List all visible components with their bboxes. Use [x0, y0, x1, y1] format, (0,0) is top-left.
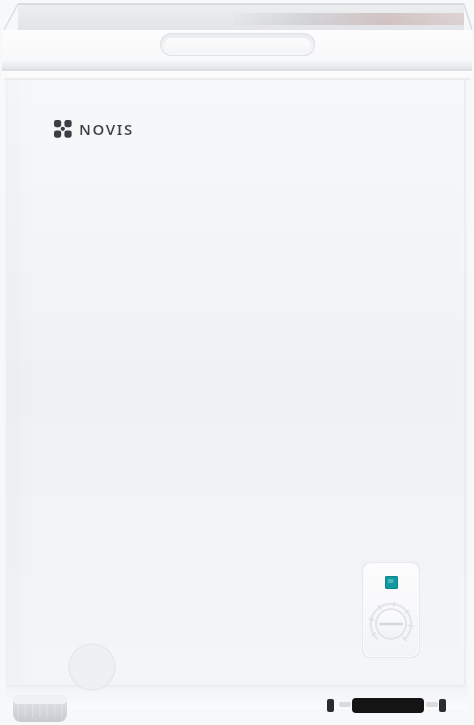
button[interactable]: Thermostat dial	[369, 602, 413, 646]
button[interactable]: Lid handle	[160, 33, 315, 56]
button[interactable]: NOVIS brand logo	[54, 119, 134, 139]
staticText: NOVIS	[79, 119, 134, 139]
button[interactable]: Power indicator light	[385, 576, 398, 589]
button[interactable]: Temperature control panel	[362, 562, 420, 658]
